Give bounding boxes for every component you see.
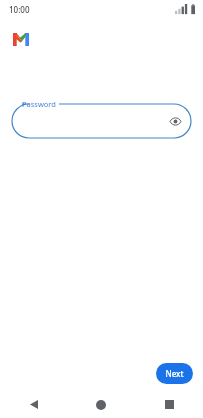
button[interactable]: Home — [67, 391, 135, 418]
staticText: Password — [22, 99, 56, 109]
staticText: 10:00 — [9, 4, 30, 15]
button[interactable]: Next — [156, 363, 193, 384]
button[interactable]: Back — [0, 391, 67, 418]
button[interactable]: Recent apps — [135, 391, 203, 418]
staticText: Next — [165, 368, 184, 379]
button[interactable]: Show password — [12, 104, 191, 138]
button[interactable]: Show password — [165, 111, 185, 131]
